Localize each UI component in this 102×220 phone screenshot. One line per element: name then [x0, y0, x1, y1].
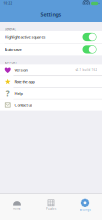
staticText: Puzzles — [46, 207, 56, 211]
staticText: Home — [13, 207, 21, 210]
button[interactable]: Auto save — [0, 43, 102, 55]
button[interactable]: ? — [0, 88, 102, 99]
staticText: Auto save — [5, 47, 22, 52]
staticText: Rate the app — [14, 79, 34, 84]
staticText: Settings — [79, 208, 90, 211]
button[interactable]: Highlight active squares — [0, 31, 102, 43]
staticText: ? — [6, 88, 10, 99]
staticText: Version — [14, 67, 27, 73]
staticText: v2.1 build 162 — [75, 68, 97, 72]
button[interactable]: Contact us — [0, 99, 102, 110]
staticText: SUPPORT — [5, 61, 17, 64]
staticText: GENERAL — [5, 27, 16, 31]
button[interactable]: Settings — [68, 194, 102, 220]
button[interactable]: Rate the app — [0, 76, 102, 87]
button[interactable]: Puzzles — [34, 194, 68, 220]
staticText: Settings — [40, 11, 61, 18]
staticText: Help — [14, 91, 22, 96]
button[interactable]: Home — [0, 194, 34, 220]
staticText: Contact us — [14, 102, 32, 108]
staticText: Highlight active squares — [5, 34, 46, 40]
staticText: 10:22 — [4, 2, 13, 5]
button[interactable]: Version — [0, 64, 102, 76]
